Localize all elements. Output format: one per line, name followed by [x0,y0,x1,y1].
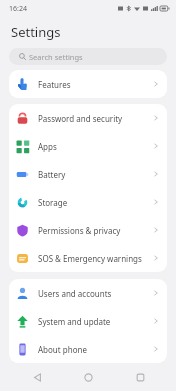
staticText: Apps [38,141,153,152]
staticText: Settings [11,23,61,41]
staticText: Password and security [38,113,153,124]
button[interactable]: Features [9,70,167,98]
staticText: Features [38,79,153,90]
staticText: Permissions & privacy [38,225,153,236]
staticText: Battery [38,169,153,180]
button[interactable]: Search settings [9,48,167,65]
button[interactable]: Users and accounts [9,279,167,307]
button[interactable]: SOS & Emergency warnings [9,244,167,272]
button[interactable]: Permissions & privacy [9,216,167,244]
button[interactable]: Battery [9,160,167,188]
button[interactable]: Storage [9,188,167,216]
button[interactable]: Recent apps [125,363,155,391]
staticText: System and update [38,316,153,327]
button[interactable]: Password and security [9,104,167,132]
staticText: Storage [38,197,153,208]
button[interactable]: System and update [9,307,167,335]
staticText: Users and accounts [38,288,153,299]
staticText: Search settings [29,52,83,62]
staticText: SOS & Emergency warnings [38,253,153,264]
button[interactable]: Back [22,363,52,391]
button[interactable]: Home [73,363,103,391]
staticText: About phone [38,344,153,355]
button[interactable]: About phone [9,335,167,363]
button[interactable]: Apps [9,132,167,160]
staticText: 16:24 [9,4,27,14]
